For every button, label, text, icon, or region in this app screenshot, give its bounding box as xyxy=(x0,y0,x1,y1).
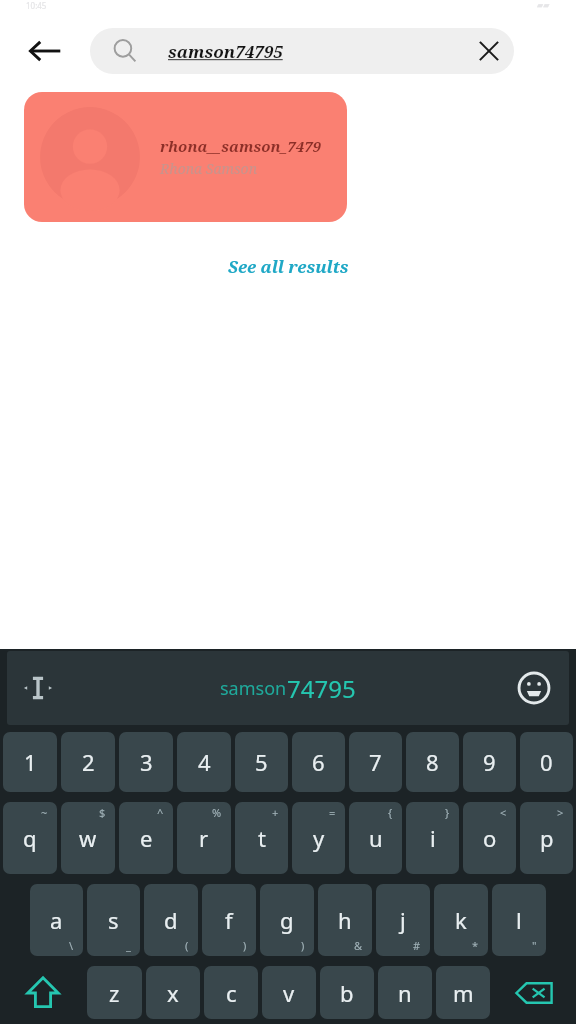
staticText: d xyxy=(164,905,178,935)
button[interactable]: Back xyxy=(0,14,90,88)
button[interactable]: Emoji xyxy=(511,665,557,711)
staticText: y xyxy=(313,823,325,853)
staticText: q xyxy=(23,823,37,853)
button[interactable]: 5 xyxy=(235,732,288,792)
button[interactable]: y xyxy=(292,802,345,874)
staticText: 7 xyxy=(369,747,382,777)
staticText: b xyxy=(340,978,354,1008)
button[interactable]: n xyxy=(378,966,432,1019)
staticText: ) xyxy=(301,938,305,953)
staticText: < xyxy=(500,805,507,820)
staticText: i xyxy=(430,823,436,853)
button[interactable]: 9 xyxy=(463,732,516,792)
staticText: z xyxy=(109,978,120,1008)
staticText: = xyxy=(329,805,336,820)
button[interactable]: k xyxy=(434,884,488,956)
button[interactable]: samson xyxy=(220,672,356,705)
staticText: g xyxy=(280,905,294,935)
staticText: n xyxy=(398,978,412,1008)
staticText: ^ xyxy=(157,805,164,820)
button[interactable]: o xyxy=(463,802,516,874)
staticText: " xyxy=(532,938,537,953)
button[interactable]: Shift xyxy=(3,961,83,1024)
button[interactable]: l xyxy=(492,884,546,956)
staticText: _ xyxy=(126,938,131,953)
staticText: 1 xyxy=(24,747,37,777)
button[interactable]: i xyxy=(406,802,459,874)
button[interactable]: p xyxy=(520,802,573,874)
button[interactable]: a xyxy=(30,884,83,956)
button[interactable]: j xyxy=(376,884,430,956)
staticText: k xyxy=(455,905,467,935)
button[interactable]: d xyxy=(144,884,198,956)
button[interactable]: q xyxy=(3,802,57,874)
button[interactable]: u xyxy=(349,802,402,874)
staticText: x xyxy=(167,978,179,1008)
staticText: j xyxy=(400,905,406,935)
staticText: 74795 xyxy=(287,672,356,705)
button[interactable]: t xyxy=(235,802,288,874)
staticText: w xyxy=(79,823,97,853)
staticText: ) xyxy=(243,938,247,953)
button[interactable]: g xyxy=(260,884,314,956)
button[interactable]: b xyxy=(320,966,374,1019)
staticText: $ xyxy=(99,805,106,820)
staticText: \ xyxy=(69,938,74,953)
button[interactable]: v xyxy=(262,966,316,1019)
button[interactable]: 6 xyxy=(292,732,345,792)
staticText: 3 xyxy=(140,747,153,777)
button[interactable]: f xyxy=(202,884,256,956)
staticText: > xyxy=(557,805,564,820)
button[interactable]: rhona__samson_7479 xyxy=(24,92,347,222)
button[interactable]: 7 xyxy=(349,732,402,792)
button[interactable]: m xyxy=(436,966,490,1019)
staticText: l xyxy=(516,905,522,935)
button[interactable]: s xyxy=(87,884,140,956)
staticText: m xyxy=(453,978,474,1008)
button[interactable]: e xyxy=(119,802,173,874)
staticText: 10:45 xyxy=(26,0,47,11)
button[interactable]: r xyxy=(177,802,231,874)
staticText: 4 xyxy=(198,747,211,777)
staticText: 2 xyxy=(82,747,95,777)
staticText: * xyxy=(472,938,479,953)
button[interactable]: Move cursor xyxy=(15,665,61,711)
button[interactable]: Backspace xyxy=(494,961,573,1024)
button[interactable]: Clear search xyxy=(458,20,520,82)
staticText: f xyxy=(225,905,233,935)
staticText: v xyxy=(283,978,295,1008)
staticText: # xyxy=(413,938,421,953)
button[interactable]: z xyxy=(87,966,142,1019)
staticText: u xyxy=(369,823,383,853)
staticText: h xyxy=(338,905,352,935)
button[interactable]: 8 xyxy=(406,732,459,792)
staticText: s xyxy=(108,905,119,935)
staticText: p xyxy=(540,823,554,853)
staticText: % xyxy=(212,805,222,820)
staticText: } xyxy=(445,805,450,820)
button[interactable]: 1 xyxy=(3,732,57,792)
button[interactable]: h xyxy=(318,884,372,956)
staticText: c xyxy=(226,978,237,1008)
staticText: See all results xyxy=(228,255,349,278)
staticText: r xyxy=(199,823,209,853)
staticText: { xyxy=(388,805,393,820)
button[interactable]: x xyxy=(146,966,200,1019)
staticText: o xyxy=(483,823,497,853)
button[interactable]: 0 xyxy=(520,732,573,792)
button[interactable]: samson74795 xyxy=(90,28,514,74)
button[interactable]: 4 xyxy=(177,732,231,792)
button[interactable]: See all results xyxy=(228,255,349,278)
button[interactable]: c xyxy=(204,966,258,1019)
staticText: ▰▰ xyxy=(537,1,550,10)
staticText: 9 xyxy=(483,747,496,777)
button[interactable]: w xyxy=(61,802,115,874)
staticText: rhona__samson_7479 xyxy=(160,136,321,156)
staticText: samson74795 xyxy=(168,40,283,63)
button[interactable]: 2 xyxy=(61,732,115,792)
staticText: 0 xyxy=(540,747,553,777)
staticText: samson xyxy=(220,676,287,701)
staticText: 6 xyxy=(312,747,325,777)
button[interactable]: 3 xyxy=(119,732,173,792)
staticText: Rhona Samson xyxy=(160,159,258,178)
